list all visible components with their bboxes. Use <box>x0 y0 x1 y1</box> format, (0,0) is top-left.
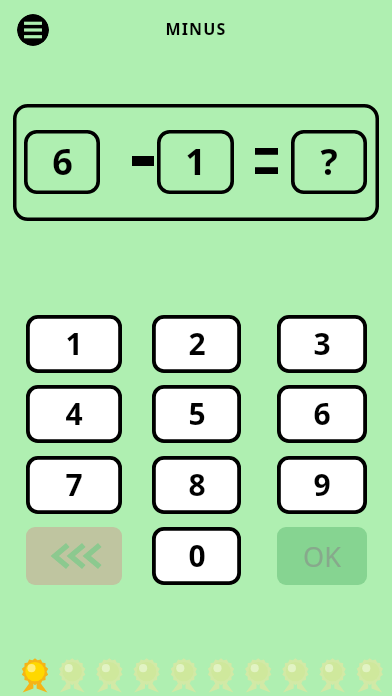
button[interactable]: 9 <box>277 456 367 514</box>
staticText: 2 <box>188 323 206 364</box>
button[interactable]: 5 <box>152 385 241 443</box>
button[interactable]: OK <box>277 527 367 585</box>
staticText: 1 <box>65 323 83 364</box>
staticText: 9 <box>313 464 331 505</box>
staticText: 6 <box>52 137 73 186</box>
button[interactable]: 7 <box>26 456 122 514</box>
button[interactable]: 4 <box>26 385 122 443</box>
staticText: 1 <box>185 137 206 186</box>
staticText: 4 <box>65 393 83 434</box>
button[interactable]: 2 <box>152 315 241 373</box>
staticText: 8 <box>188 464 206 505</box>
staticText: ? <box>320 137 338 186</box>
button[interactable]: 6 <box>277 385 367 443</box>
button[interactable]: Menu <box>17 14 49 46</box>
button[interactable]: 8 <box>152 456 241 514</box>
staticText: 3 <box>313 323 331 364</box>
button[interactable]: Backspace <box>26 527 122 585</box>
staticText: 5 <box>188 393 206 434</box>
staticText: MINUS <box>165 18 227 40</box>
staticText: 0 <box>188 535 206 576</box>
button[interactable]: 1 <box>26 315 122 373</box>
staticText: 6 <box>313 393 331 434</box>
staticText: OK <box>303 538 341 575</box>
button[interactable]: 0 <box>152 527 241 585</box>
staticText: 7 <box>65 464 83 505</box>
button[interactable]: 3 <box>277 315 367 373</box>
